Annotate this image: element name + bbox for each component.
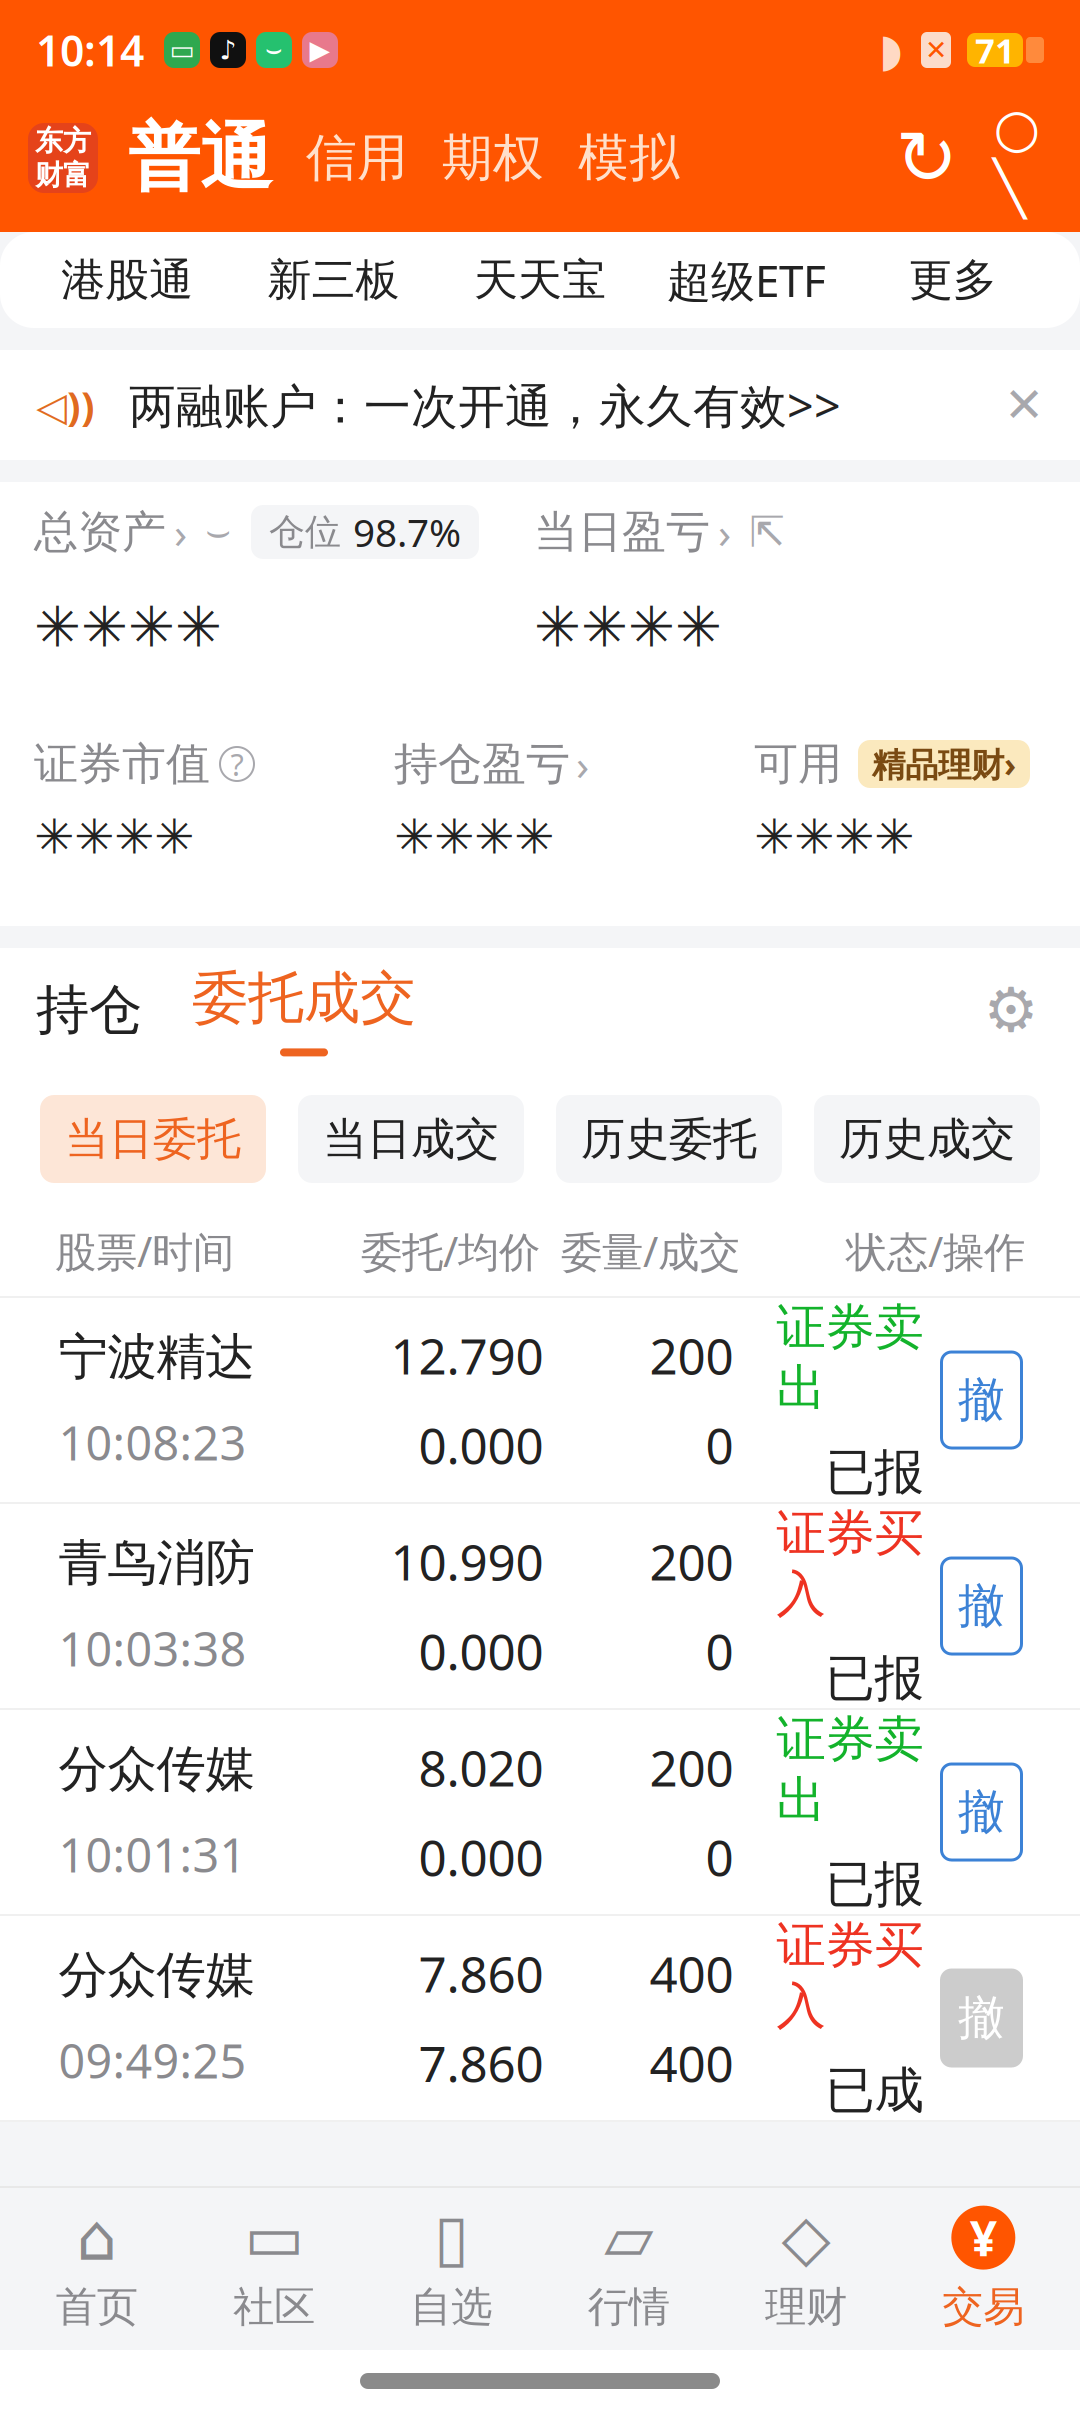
staticText: 当日盈亏 [534,505,710,559]
staticText: ✳✳✳✳ [534,595,722,659]
staticText: 财富 [35,158,91,192]
staticText: 期权 [442,127,544,189]
staticText: 模拟 [578,127,680,189]
staticText: › [174,504,187,560]
button[interactable]: 期权 [442,127,544,189]
staticText: 7.860 [418,1940,543,2006]
button[interactable]: ▭ [185,2206,363,2332]
button[interactable]: 当日成交 [298,1095,524,1183]
button[interactable]: 东方财富 [28,123,98,193]
staticText: 总资产 [34,505,166,559]
staticText: 分众传媒 [58,1945,254,2005]
staticText: 撤 [958,1783,1005,1841]
staticText: 仓位 [269,510,341,554]
button[interactable]: 模拟 [578,127,680,189]
button[interactable]: 当日委托 [40,1095,266,1183]
staticText: 已报 [825,1442,923,1503]
button[interactable]: ▱ [540,2206,717,2332]
staticText: ⌣ [265,37,283,63]
button[interactable]: ◇ [717,2206,895,2332]
button[interactable]: 分众传媒 [0,1710,1080,1916]
button[interactable]: 历史成交 [814,1095,1040,1183]
button[interactable]: 普通 [128,114,272,202]
staticText: 两融账户：一次开通，永久有效>> [129,374,841,436]
button[interactable]: 委托成交 [192,964,416,1056]
staticText: 当日委托 [65,1112,241,1166]
staticText: 400 [649,1940,733,2006]
staticText: 精品理财› [872,742,1016,786]
staticText: 持仓 [36,977,142,1043]
staticText: ✳✳✳✳ [34,595,222,659]
button[interactable]: ◁)) [0,350,1080,460]
staticText: 已成 [825,2060,923,2121]
staticText: 理财 [765,2282,847,2332]
staticText: ✕ [1004,378,1044,432]
staticText: ✳✳✳✳ [754,810,914,864]
button[interactable]: 搜索 [982,123,1052,193]
staticText: 0.000 [418,1824,543,1889]
button[interactable]: 分众传媒 [0,1916,1080,2122]
button[interactable]: 撤单 [941,1764,1021,1860]
button[interactable]: 宁波精达 [0,1298,1080,1504]
button[interactable]: ⌂ [8,2206,185,2332]
button[interactable]: 撤单 [941,1970,1021,2066]
staticText: 状态/操作 [846,1224,1025,1278]
staticText: 宁波精达 [58,1327,254,1387]
staticText: ◗ [879,24,903,76]
staticText: 撤 [958,1371,1005,1429]
staticText: ⌂ [76,2201,117,2274]
button[interactable]: 新三板 [230,253,437,307]
staticText: 委量/成交 [561,1224,740,1278]
staticText: ▭ [244,2201,304,2274]
staticText: ▱ [604,2201,653,2274]
button[interactable]: 天天宝 [437,253,643,307]
staticText: 撤 [958,1989,1005,2047]
staticText: 历史委托 [581,1112,757,1166]
button[interactable]: 精品理财› [858,740,1030,788]
staticText: 71 [975,27,1015,73]
staticText: 超级ETF [667,251,826,309]
staticText: 历史成交 [839,1112,1015,1166]
staticText: 委托/均价 [361,1224,540,1278]
button[interactable]: 青鸟消防 [0,1504,1080,1710]
button[interactable]: 信用 [306,127,408,189]
staticText: ⇱ [749,508,785,556]
button[interactable]: 撤单 [941,1558,1021,1654]
staticText: 200 [649,1322,733,1388]
button[interactable]: 持仓 [36,977,142,1043]
staticText: ⚙ [983,975,1038,1045]
staticText: 0.000 [418,1412,543,1477]
staticText: 10:03:38 [58,1617,246,1679]
staticText: 行情 [588,2282,670,2332]
staticText: 更多 [909,253,997,307]
staticText: 证券买入 [776,1915,923,2036]
staticText: ✳✳✳✳ [34,810,194,864]
staticText: ¥ [970,2206,997,2269]
staticText: 持仓盈亏 [394,737,570,791]
staticText: 已报 [825,1648,923,1709]
staticText: ◁)) [36,378,95,431]
staticText: 0 [705,1412,733,1477]
button[interactable]: 更多 [850,253,1056,307]
button[interactable]: ▯ [363,2206,540,2332]
button[interactable]: 港股通 [24,253,230,307]
staticText: › [576,736,589,792]
button[interactable]: 撤单 [941,1352,1021,1448]
staticText: 09:49:25 [58,2029,246,2091]
staticText: 证券卖出 [776,1297,923,1418]
button[interactable]: 刷新 [892,123,962,193]
staticText: 撤 [958,1577,1005,1635]
staticText: 0 [705,1824,733,1889]
staticText: ♪ [219,35,236,65]
button[interactable]: 设置 [978,977,1044,1043]
staticText: 社区 [233,2282,315,2332]
button[interactable]: 超级ETF [643,251,850,309]
staticText: ⌣ [205,512,231,551]
staticText: 当日成交 [323,1112,499,1166]
button[interactable]: 历史委托 [556,1095,782,1183]
staticText: 信用 [306,127,408,189]
staticText: 证券市值 [34,737,210,791]
button[interactable]: ¥ [895,2206,1072,2332]
staticText: 7.860 [418,2030,543,2095]
staticText: 股票/时间 [55,1224,234,1278]
